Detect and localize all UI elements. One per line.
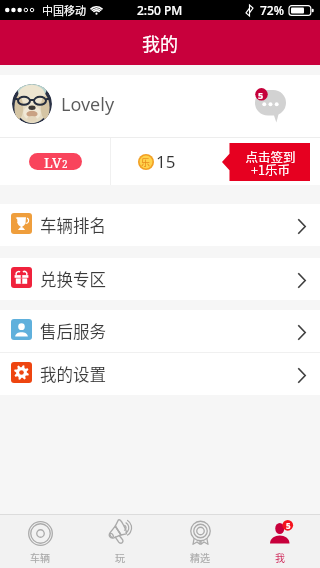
- button[interactable]: 售后服务: [0, 310, 320, 352]
- staticText: 兑换专区: [40, 267, 106, 291]
- staticText: 车辆排名: [40, 213, 106, 237]
- staticText: 玩: [115, 550, 125, 564]
- button[interactable]: LV: [29, 153, 82, 170]
- staticText: 我的设置: [40, 362, 106, 386]
- button[interactable]: 我的设置: [0, 353, 320, 395]
- button[interactable]: 5: [240, 515, 320, 568]
- staticText: 15: [156, 150, 176, 173]
- staticText: 2: [62, 157, 68, 170]
- staticText: 5: [258, 89, 264, 101]
- staticText: 2:50 PM: [137, 2, 183, 18]
- button[interactable]: 点击签到 +1乐币: [222, 143, 310, 181]
- staticText: 售后服务: [40, 319, 106, 343]
- button[interactable]: 车辆: [0, 515, 80, 568]
- button[interactable]: 精选: [160, 515, 240, 568]
- button[interactable]: 玩: [80, 515, 160, 568]
- staticText: 我的: [142, 30, 178, 56]
- staticText: 5: [286, 520, 291, 531]
- button[interactable]: Messages: [248, 86, 292, 124]
- button[interactable]: 兑换专区: [0, 258, 320, 300]
- staticText: 乐: [141, 156, 151, 169]
- staticText: Lovely: [61, 92, 115, 117]
- staticText: 72%: [260, 2, 284, 18]
- staticText: LV: [44, 153, 62, 170]
- staticText: 点击签到 +1乐币: [245, 147, 296, 179]
- button[interactable]: 车辆排名: [0, 204, 320, 246]
- staticText: 车辆: [30, 550, 50, 564]
- staticText: 中国移动: [42, 2, 86, 18]
- staticText: 精选: [190, 550, 210, 564]
- staticText: 我: [275, 550, 285, 564]
